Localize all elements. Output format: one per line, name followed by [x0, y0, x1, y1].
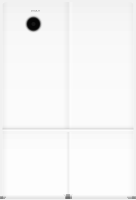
- staticText: BOSCH: [31, 9, 40, 12]
